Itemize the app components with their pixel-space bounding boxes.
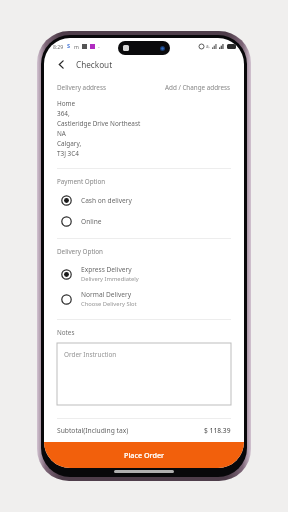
staticText: - — [98, 43, 100, 50]
staticText: Notes — [57, 328, 75, 337]
staticText: Calgary, — [57, 139, 82, 148]
staticText: Online — [81, 217, 102, 226]
button[interactable]: Cash on delivery — [57, 195, 231, 206]
staticText: Delivery address — [57, 83, 106, 92]
staticText: a, — [206, 43, 210, 49]
button[interactable]: Add / Change address — [165, 83, 231, 92]
staticText: Choose Delivery Slot — [81, 300, 137, 308]
staticText: Subtotal(Including tax) — [57, 426, 129, 435]
staticText: Normal Delivery — [81, 290, 132, 299]
button[interactable]: Online — [57, 216, 231, 227]
staticText: Delivery Immediately — [81, 275, 139, 283]
staticText: Castleridge Drive Northeast — [57, 119, 141, 128]
staticText: $ 118.39 — [204, 426, 231, 435]
staticText: Checkout — [76, 59, 113, 70]
staticText: 364, — [57, 109, 70, 118]
button[interactable]: Express Delivery — [57, 265, 231, 283]
staticText: Cash on delivery — [81, 196, 132, 205]
button[interactable]: Back — [53, 56, 69, 72]
staticText: Express Delivery — [81, 265, 132, 274]
staticText: Add / Change address — [165, 83, 231, 92]
staticText: T3J 3C4 — [57, 149, 79, 158]
staticText: Place Order — [124, 450, 165, 460]
staticText: NA — [57, 129, 66, 138]
button[interactable]: Place Order — [44, 442, 244, 468]
staticText: m — [74, 43, 79, 50]
button[interactable]: Normal Delivery — [57, 290, 231, 308]
staticText: Payment Option — [57, 177, 106, 186]
button[interactable]: Order Instruction — [57, 343, 231, 405]
staticText: Home — [57, 99, 76, 108]
staticText: Delivery Option — [57, 247, 103, 256]
staticText: Order Instruction — [64, 350, 117, 359]
staticText: 8:29 — [53, 43, 64, 50]
staticText: S — [67, 42, 71, 50]
